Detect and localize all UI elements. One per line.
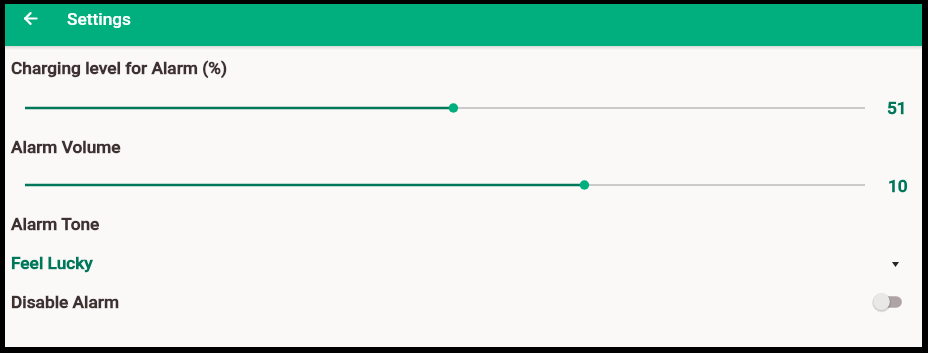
button[interactable]: Disable Alarm, off: [866, 286, 912, 318]
staticText: Charging level for Alarm (%): [11, 58, 227, 78]
staticText: Feel Lucky: [11, 253, 93, 273]
button[interactable]: Select alarm tone: [883, 252, 907, 276]
button[interactable]: Back: [15, 3, 46, 34]
button[interactable]: Alarm Volume: [5, 128, 922, 198]
staticText: Alarm Tone: [11, 214, 100, 234]
button[interactable]: Disable Alarm: [5, 282, 922, 322]
button[interactable]: Alarm Tone, Feel Lucky: [5, 208, 922, 278]
staticText: Disable Alarm: [11, 292, 120, 312]
staticText: Alarm Volume: [11, 137, 121, 157]
button[interactable]: [5, 176, 922, 194]
staticText: 10: [888, 176, 908, 196]
button[interactable]: [5, 99, 922, 117]
staticText: Settings: [67, 9, 132, 29]
staticText: 51: [887, 98, 907, 118]
button[interactable]: Charging level for Alarm: [5, 50, 922, 120]
